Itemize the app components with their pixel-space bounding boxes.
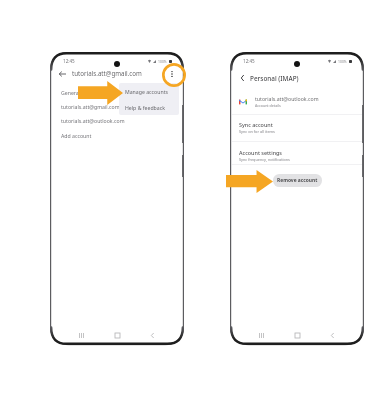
- button[interactable]: More options: [165, 67, 178, 80]
- staticText: 12:45: [243, 58, 255, 64]
- button[interactable]: tutorials.att@gmail.com: [52, 99, 182, 114]
- staticText: Account details: [255, 103, 281, 108]
- staticText: 12:45: [63, 58, 75, 64]
- staticText: 100%: [338, 59, 347, 64]
- button[interactable]: tutorials.att@outlook.com: [232, 94, 362, 109]
- staticText: Account settings: [239, 149, 282, 156]
- button[interactable]: Back: [56, 67, 69, 80]
- staticText: Sync on for all items: [239, 129, 275, 134]
- button[interactable]: Manage accounts: [119, 83, 179, 99]
- staticText: Add account: [61, 132, 92, 139]
- staticText: tutorials.att@gmail.com: [72, 69, 142, 77]
- staticText: 100%: [158, 59, 167, 64]
- staticText: tutorials.att@outlook.com: [61, 117, 125, 124]
- button[interactable]: Recents: [75, 329, 88, 342]
- button[interactable]: General: [52, 85, 182, 100]
- staticText: Sync frequency, notifications: [239, 157, 290, 162]
- button[interactable]: Remove account: [273, 174, 322, 187]
- button[interactable]: Home: [291, 329, 304, 342]
- button[interactable]: Home: [111, 329, 124, 342]
- button[interactable]: Add account: [52, 128, 182, 143]
- button[interactable]: Help & feedback: [119, 99, 179, 115]
- staticText: General: [61, 89, 81, 96]
- button[interactable]: Back: [326, 329, 339, 342]
- button[interactable]: Recents: [255, 329, 268, 342]
- button[interactable]: Back: [236, 72, 248, 84]
- staticText: tutorials.att@gmail.com: [61, 103, 120, 110]
- staticText: Manage accounts: [125, 88, 168, 95]
- staticText: Help & feedback: [125, 104, 165, 111]
- staticText: tutorials.att@outlook.com: [255, 95, 319, 102]
- staticText: Remove account: [277, 177, 318, 184]
- staticText: Personal (IMAP): [250, 74, 299, 83]
- button[interactable]: Sync account: [232, 118, 362, 138]
- button[interactable]: tutorials.att@outlook.com: [52, 113, 182, 128]
- staticText: Sync account: [239, 121, 273, 128]
- button[interactable]: Account settings: [232, 146, 362, 166]
- button[interactable]: Back: [146, 329, 159, 342]
